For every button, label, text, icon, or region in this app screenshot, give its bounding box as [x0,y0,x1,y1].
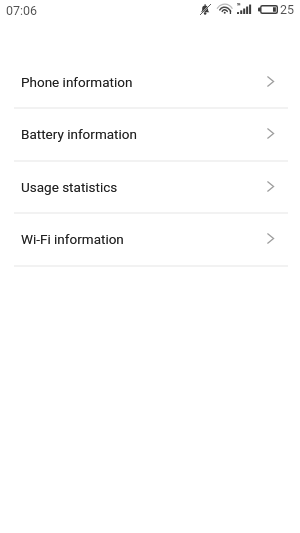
staticText: Phone information [21,74,133,90]
staticText: Phone information [21,74,133,90]
staticText: Wi-Fi information [21,231,124,247]
button[interactable]: Usage statistics [0,161,300,213]
button[interactable]: Wi-Fi information [0,213,300,265]
other: Battery 25 percent [258,5,278,14]
other: Mobile signal [237,3,252,14]
staticText: Battery information [21,126,137,142]
staticText: 25 [280,2,295,17]
other: Wi-Fi connected [219,4,232,14]
button[interactable]: Phone information [0,56,300,108]
staticText: 07:06 [6,3,38,18]
button[interactable]: Battery information [0,108,300,160]
other: Silent mode on [200,4,211,15]
staticText: Usage statistics [21,179,118,195]
staticText: Battery information [21,126,137,142]
staticText: Usage statistics [21,179,118,195]
staticText: Wi-Fi information [21,231,124,247]
